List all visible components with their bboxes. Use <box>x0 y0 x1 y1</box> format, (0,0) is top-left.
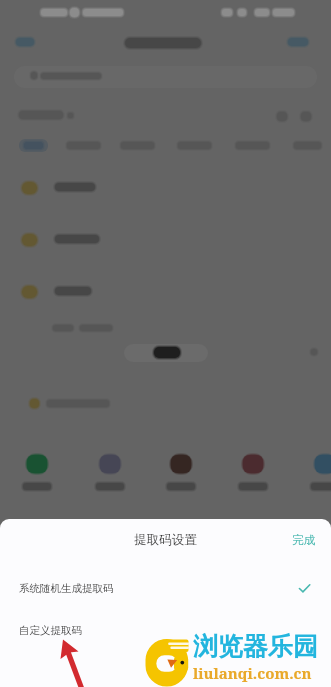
button[interactable] <box>0 218 331 258</box>
staticText: 自定义提取码 <box>19 624 82 637</box>
staticText: 提取码设置 <box>134 532 197 548</box>
button[interactable]: 完成 <box>276 523 331 557</box>
staticText: liulanqi.com.cn <box>193 663 312 683</box>
button[interactable]: 全选 <box>282 31 320 53</box>
button[interactable]: 取消 <box>8 31 44 53</box>
staticText: 系统随机生成提取码 <box>19 582 114 595</box>
button[interactable]: 系统随机生成提取码 <box>0 567 331 609</box>
button[interactable] <box>229 447 277 497</box>
staticText: 完成 <box>292 533 315 547</box>
staticText: 浏览器乐园 <box>193 631 318 662</box>
button[interactable] <box>157 447 205 497</box>
button[interactable] <box>0 166 331 206</box>
button[interactable] <box>0 270 331 310</box>
button[interactable]: 自定义提取码 <box>0 609 331 651</box>
button[interactable] <box>301 447 331 497</box>
button[interactable] <box>86 447 134 497</box>
button[interactable] <box>13 447 61 497</box>
